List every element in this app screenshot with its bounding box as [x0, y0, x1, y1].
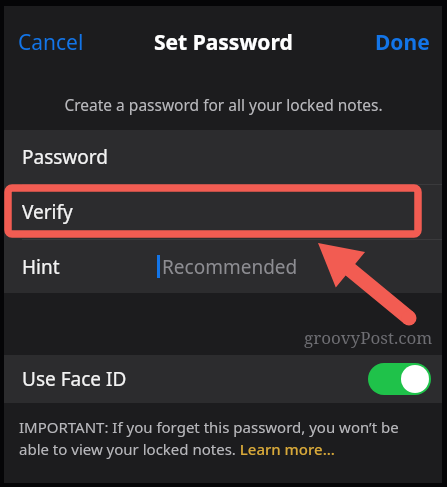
staticText: groovyPost.com [304, 326, 433, 349]
staticText: Verify [22, 199, 73, 225]
staticText: Hint [22, 254, 60, 280]
button[interactable]: Hint [4, 240, 442, 293]
button[interactable]: Use Face ID toggle, on [368, 363, 431, 395]
staticText: Use Face ID [22, 366, 127, 392]
staticText: Recommended [162, 254, 298, 280]
staticText: IMPORTANT: If you forget this password, … [19, 417, 428, 460]
button[interactable]: Cancel [4, 20, 98, 65]
button[interactable]: Done [363, 20, 442, 65]
staticText: Password [22, 144, 108, 170]
staticText: Set Password [154, 28, 293, 57]
staticText: Cancel [18, 28, 84, 57]
staticText: Create a password for all your locked no… [64, 94, 383, 115]
staticText: Done [375, 28, 430, 57]
button[interactable]: Use Face ID [4, 355, 442, 403]
button[interactable]: Password [4, 130, 442, 184]
button[interactable]: Verify [4, 185, 442, 239]
